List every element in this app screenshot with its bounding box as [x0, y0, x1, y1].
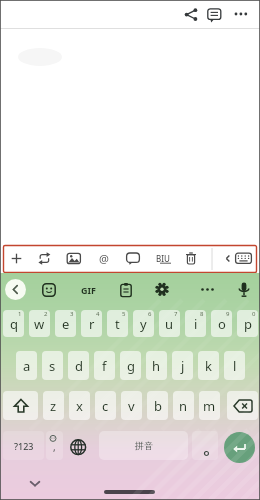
button[interactable]: q [3, 310, 24, 337]
button[interactable]: GIF [76, 283, 100, 297]
button[interactable]: a [16, 351, 37, 380]
staticText: 拼音 [135, 440, 153, 451]
staticText: 0 [252, 310, 256, 318]
button[interactable] [224, 432, 255, 463]
staticText: m [203, 397, 216, 415]
button[interactable]: k [198, 351, 219, 380]
staticText: r [89, 315, 95, 333]
staticText: i [194, 315, 198, 333]
staticText: 3 [70, 310, 74, 318]
button[interactable] [65, 431, 92, 460]
staticText: 2 [44, 310, 48, 318]
staticText: ?123 [14, 440, 34, 452]
button[interactable] [65, 250, 83, 267]
staticText: y [140, 315, 147, 333]
button[interactable] [5, 279, 26, 300]
button[interactable]: u [159, 310, 180, 337]
button[interactable]: n [173, 391, 194, 420]
button[interactable]: s [42, 351, 63, 380]
staticText: z [50, 397, 57, 415]
button[interactable]: y [133, 310, 154, 337]
staticText: d [75, 357, 83, 375]
staticText: 7 [174, 310, 178, 318]
staticText: k [205, 357, 212, 375]
button[interactable] [223, 252, 233, 265]
button[interactable]: t [107, 310, 128, 337]
staticText: n [179, 397, 188, 415]
button[interactable] [8, 250, 26, 268]
staticText: 4 [96, 310, 100, 318]
staticText: GIF [81, 284, 96, 296]
button[interactable] [119, 282, 133, 298]
button[interactable] [36, 250, 53, 267]
button[interactable] [3, 391, 38, 420]
staticText: u [165, 315, 174, 333]
staticText: a [23, 357, 31, 375]
button[interactable]: e [55, 310, 76, 337]
button[interactable]: BIU [152, 250, 174, 267]
staticText: s [49, 357, 56, 375]
button[interactable] [42, 283, 56, 297]
staticText: 5 [122, 310, 126, 318]
staticText: e [62, 315, 70, 333]
button[interactable] [184, 7, 199, 22]
staticText: 6 [148, 310, 152, 318]
staticText: p [244, 315, 252, 333]
button[interactable] [227, 391, 258, 420]
staticText: g [127, 357, 135, 375]
staticText: 9 [226, 310, 230, 318]
button[interactable] [183, 250, 199, 267]
button[interactable]: j [172, 351, 193, 380]
staticText: w [34, 315, 45, 333]
staticText: t [115, 315, 120, 333]
staticText: l [233, 357, 237, 375]
staticText: 8 [200, 310, 204, 318]
button[interactable] [104, 490, 155, 494]
staticText: x [76, 397, 83, 415]
button[interactable]: h [146, 351, 167, 380]
staticText: f [102, 357, 107, 375]
staticText: q [10, 315, 18, 333]
button[interactable]: r [81, 310, 102, 337]
button[interactable] [232, 7, 250, 21]
button[interactable] [192, 431, 218, 460]
button[interactable]: ?123 [3, 431, 44, 460]
staticText: j [181, 357, 185, 375]
button[interactable] [125, 250, 141, 267]
staticText: c [102, 397, 109, 415]
button[interactable] [199, 284, 216, 296]
button[interactable] [207, 8, 222, 24]
button[interactable]: w [29, 310, 50, 337]
button[interactable] [234, 250, 254, 267]
button[interactable]: d [68, 351, 89, 380]
button[interactable]: m [199, 391, 220, 420]
staticText: o [218, 315, 226, 333]
button[interactable]: x [69, 391, 90, 420]
staticText: BIU [156, 253, 170, 264]
button[interactable]: @ [96, 251, 111, 266]
button[interactable]: f [94, 351, 115, 380]
staticText: h [152, 357, 161, 375]
button[interactable]: i [185, 310, 206, 337]
button[interactable]: , [46, 431, 63, 460]
button[interactable]: g [120, 351, 141, 380]
staticText: b [154, 397, 162, 415]
button[interactable]: v [121, 391, 142, 420]
staticText: @ [99, 251, 109, 266]
staticText: , [53, 440, 56, 454]
staticText: 1 [18, 310, 22, 318]
button[interactable]: o [211, 310, 232, 337]
button[interactable]: c [95, 391, 116, 420]
button[interactable] [27, 477, 43, 490]
button[interactable]: 拼音 [99, 431, 188, 460]
button[interactable]: p [237, 310, 258, 337]
button[interactable]: z [43, 391, 64, 420]
button[interactable] [154, 282, 170, 298]
button[interactable]: l [224, 351, 245, 380]
button[interactable]: b [147, 391, 168, 420]
staticText: v [128, 397, 135, 415]
button[interactable] [237, 281, 251, 300]
